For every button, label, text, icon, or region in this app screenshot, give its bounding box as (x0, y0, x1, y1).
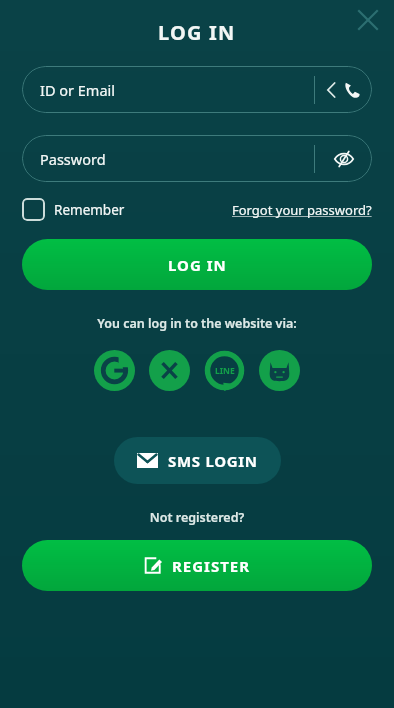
staticText: LOG IN (158, 19, 236, 46)
staticText: REGISTER (172, 556, 251, 576)
button[interactable]: Log in with X (149, 350, 190, 391)
staticText: LINE (215, 365, 235, 377)
button[interactable]: Forgot your password? (232, 201, 372, 219)
button[interactable]: Close (350, 2, 386, 38)
staticText: Forgot your password? (232, 201, 372, 219)
staticText: ID or Email (40, 80, 116, 100)
staticText: LOG IN (168, 255, 227, 275)
button[interactable]: Log in with LINE (204, 350, 245, 391)
button[interactable]: LOG IN (22, 239, 372, 290)
button[interactable]: REGISTER (22, 540, 372, 591)
staticText: You can log in to the website via: (0, 315, 394, 332)
button[interactable]: Remember (22, 198, 125, 221)
button[interactable]: SMS LOGIN (114, 437, 281, 484)
button[interactable]: Password (22, 135, 372, 182)
button[interactable]: Log in with Google (94, 350, 135, 391)
staticText: Remember (54, 201, 125, 219)
button[interactable]: ID or Email (22, 66, 372, 113)
staticText: SMS LOGIN (168, 451, 258, 471)
staticText: Password (40, 149, 106, 169)
button[interactable]: Log in with social (259, 350, 300, 391)
staticText: Not registered? (0, 509, 394, 526)
